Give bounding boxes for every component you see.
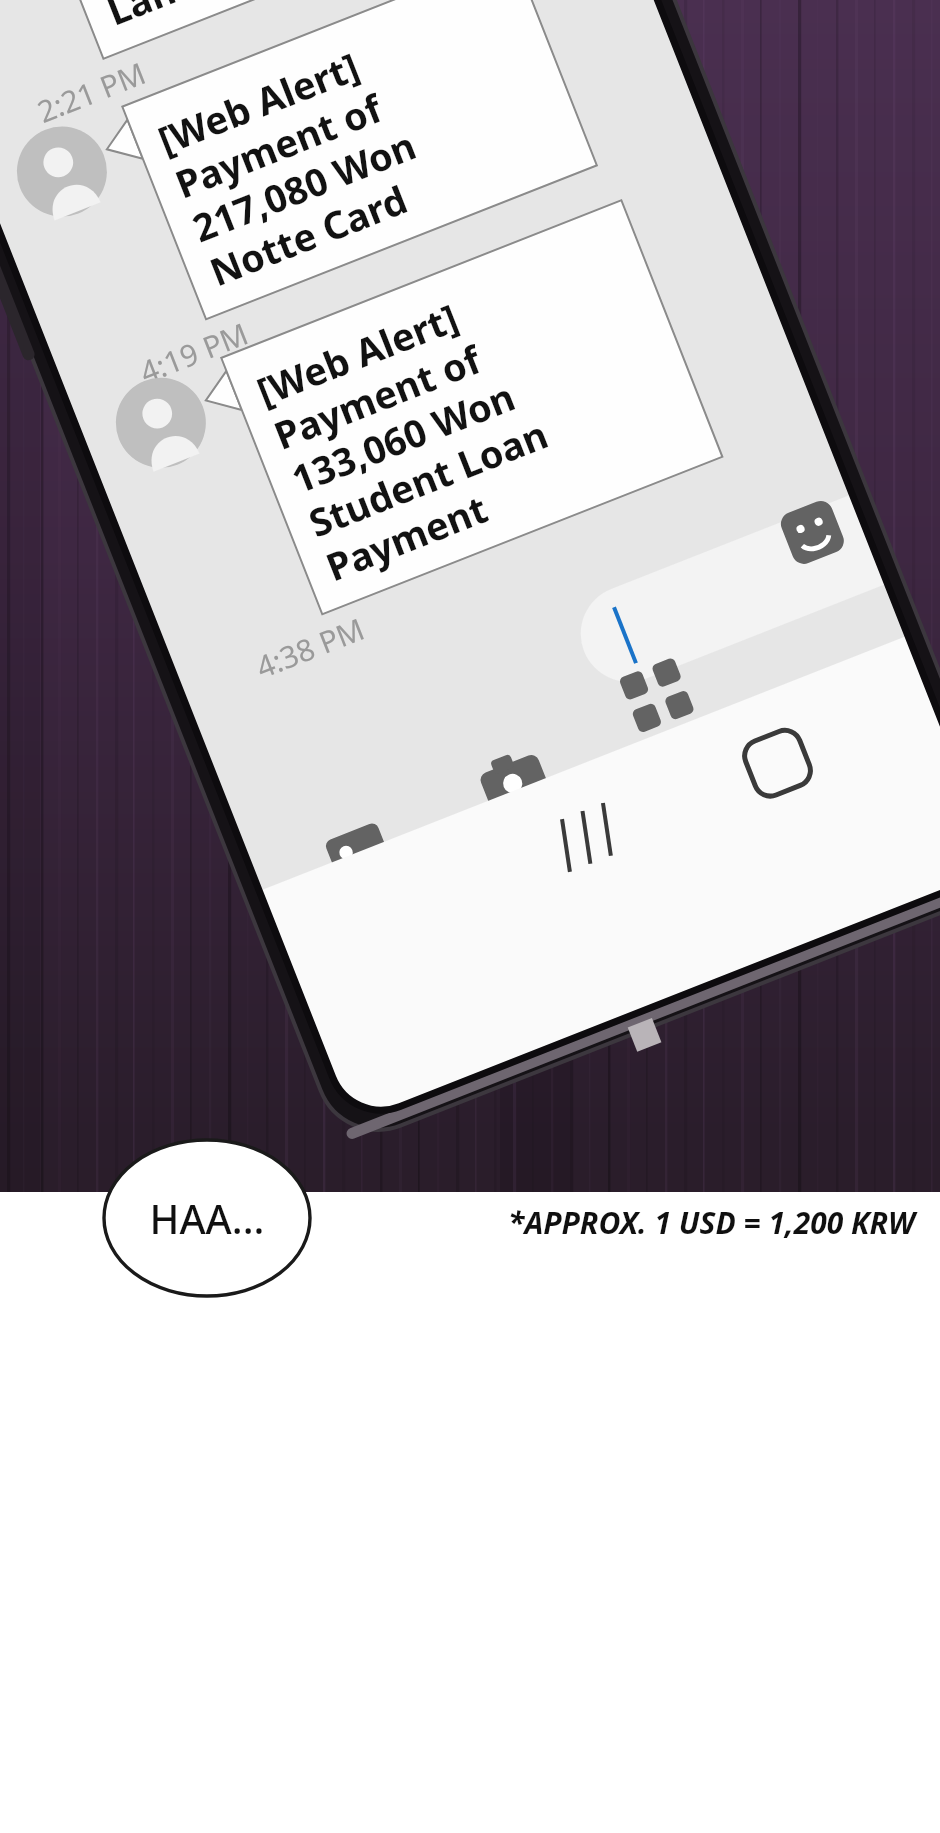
button[interactable]: Comic panel: phone chat with bank alerts (0, 0, 940, 1833)
